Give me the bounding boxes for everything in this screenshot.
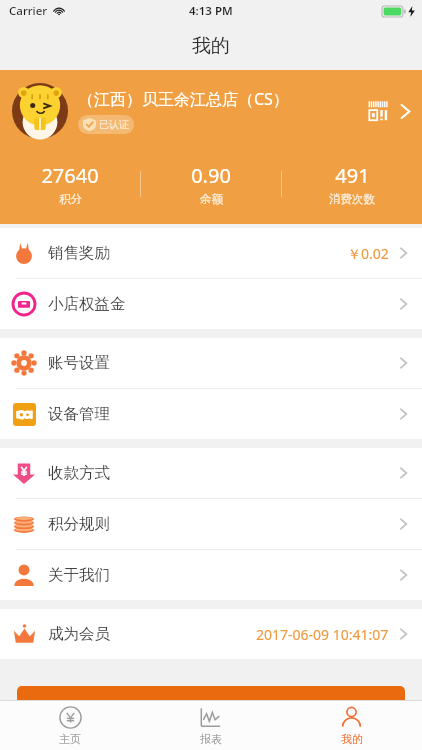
button[interactable]: 账号设置 [0, 338, 422, 388]
staticText: Carrier [9, 3, 48, 19]
staticText: 491 [335, 162, 370, 189]
button[interactable] [17, 686, 405, 700]
button[interactable]: 关于我们 [0, 550, 422, 600]
staticText: 收款方式 [48, 463, 110, 483]
staticText: 我的 [341, 732, 363, 746]
button[interactable]: 我的 [281, 701, 422, 750]
staticText: 4:13 PM [189, 3, 233, 19]
staticText: 已认证 [99, 118, 129, 131]
staticText: 成为会员 [48, 624, 110, 644]
button[interactable]: 销售奖励 [0, 228, 422, 278]
button[interactable]: 扫码 [364, 100, 394, 122]
staticText: 0.90 [191, 162, 231, 189]
staticText: 主页 [59, 732, 81, 746]
staticText: 消费次数 [329, 192, 375, 206]
staticText: 我的 [192, 34, 230, 58]
button[interactable]: 27640 [0, 162, 140, 206]
staticText: 余额 [200, 192, 223, 206]
staticText: 设备管理 [48, 404, 110, 424]
staticText: 销售奖励 [48, 243, 110, 263]
button[interactable]: 成为会员 [0, 609, 422, 659]
staticText: 小店权益金 [48, 294, 126, 314]
staticText: 报表 [200, 732, 222, 746]
button[interactable]: 主页 [0, 701, 140, 750]
button[interactable]: 积分规则 [0, 499, 422, 549]
button[interactable]: 设备管理 [0, 389, 422, 439]
button[interactable]: 491 [282, 162, 422, 206]
button[interactable]: 收款方式 [0, 448, 422, 498]
staticText: 积分 [59, 192, 82, 206]
staticText: 积分规则 [48, 514, 110, 534]
staticText: ￥0.02 [347, 244, 389, 263]
button[interactable]: （江西）贝王余江总店（CS） [0, 70, 422, 152]
staticText: 2017-06-09 10:41:07 [256, 625, 389, 644]
staticText: （江西）贝王余江总店（CS） [78, 88, 289, 110]
staticText: 27640 [41, 162, 99, 189]
button[interactable]: 小店权益金 [0, 279, 422, 329]
button[interactable]: 报表 [140, 701, 281, 750]
staticText: 账号设置 [48, 353, 110, 373]
staticText: 关于我们 [48, 565, 110, 585]
button[interactable]: 0.90 [141, 162, 281, 206]
